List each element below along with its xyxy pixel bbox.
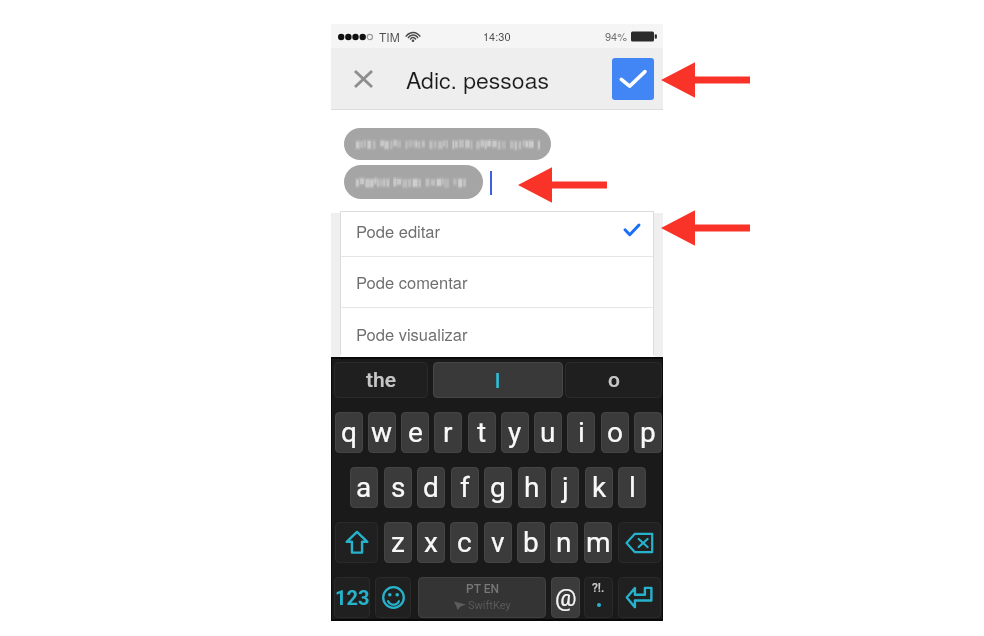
staticText: v bbox=[491, 526, 505, 559]
button[interactable]: u bbox=[534, 412, 562, 453]
button[interactable]: Confirmar bbox=[612, 58, 654, 100]
button[interactable]: Shift bbox=[335, 522, 378, 563]
button[interactable]: h bbox=[518, 467, 546, 508]
button[interactable]: o bbox=[601, 412, 629, 453]
staticText: Pode editar bbox=[356, 219, 440, 243]
staticText: w bbox=[371, 416, 393, 449]
staticText: q bbox=[341, 416, 357, 449]
staticText: 14:30 bbox=[483, 28, 511, 44]
button[interactable]: Pode visualizar bbox=[340, 307, 654, 357]
staticText: Pode comentar bbox=[356, 270, 468, 294]
staticText: t bbox=[477, 416, 487, 449]
staticText: 123 bbox=[335, 586, 370, 609]
staticText: l bbox=[629, 471, 636, 504]
button[interactable]: s bbox=[384, 467, 412, 508]
button[interactable]: i bbox=[567, 412, 595, 453]
staticText: Pode visualizar bbox=[356, 322, 468, 346]
staticText: i bbox=[578, 416, 585, 449]
button[interactable]: f bbox=[451, 467, 479, 508]
button[interactable] bbox=[344, 165, 483, 199]
button[interactable]: Fechar bbox=[347, 63, 379, 95]
staticText: TIM bbox=[379, 28, 400, 45]
button[interactable]: Emoji bbox=[375, 577, 411, 618]
button[interactable] bbox=[344, 128, 551, 160]
button[interactable]: PT EN bbox=[418, 577, 546, 618]
staticText: p bbox=[640, 416, 656, 449]
button[interactable]: y bbox=[501, 412, 529, 453]
button[interactable]: e bbox=[401, 412, 429, 453]
staticText: l bbox=[495, 369, 501, 392]
staticText: o bbox=[608, 368, 620, 393]
button[interactable]: k bbox=[585, 467, 613, 508]
staticText: @ bbox=[555, 584, 577, 612]
button[interactable]: 123 bbox=[334, 577, 370, 618]
button[interactable]: j bbox=[551, 467, 579, 508]
staticText: r bbox=[443, 416, 453, 449]
staticText: ?!. bbox=[592, 581, 605, 595]
button[interactable]: l bbox=[618, 467, 646, 508]
button[interactable]: n bbox=[550, 522, 578, 563]
staticText: PT EN bbox=[466, 582, 499, 596]
button[interactable]: p bbox=[634, 412, 662, 453]
button[interactable]: w bbox=[368, 412, 396, 453]
staticText: o bbox=[607, 416, 623, 449]
button[interactable]: ?!. bbox=[584, 577, 613, 618]
staticText: b bbox=[523, 526, 539, 559]
button[interactable]: r bbox=[434, 412, 462, 453]
staticText: k bbox=[592, 471, 607, 504]
button[interactable]: b bbox=[517, 522, 545, 563]
button[interactable]: Pode editar bbox=[340, 211, 654, 256]
staticText: Adic. pessoas bbox=[406, 63, 549, 96]
staticText: the bbox=[366, 368, 396, 393]
button[interactable]: q bbox=[335, 412, 363, 453]
button[interactable]: x bbox=[417, 522, 445, 563]
button[interactable]: the bbox=[334, 362, 428, 398]
button[interactable]: Pode comentar bbox=[340, 256, 654, 307]
staticText: SwiftKey bbox=[468, 599, 511, 612]
staticText: y bbox=[508, 416, 522, 449]
staticText: x bbox=[424, 526, 438, 559]
staticText: 94% bbox=[605, 28, 628, 44]
button[interactable]: @ bbox=[551, 577, 580, 618]
staticText: z bbox=[391, 526, 405, 559]
button[interactable]: m bbox=[584, 522, 612, 563]
button[interactable]: d bbox=[417, 467, 445, 508]
button[interactable]: c bbox=[450, 522, 478, 563]
button[interactable]: z bbox=[384, 522, 412, 563]
staticText: d bbox=[423, 471, 439, 504]
button[interactable]: t bbox=[468, 412, 496, 453]
button[interactable]: Backspace bbox=[618, 522, 661, 563]
staticText: s bbox=[391, 471, 406, 504]
button[interactable]: l bbox=[433, 362, 563, 398]
staticText: e bbox=[408, 416, 423, 449]
staticText: c bbox=[457, 526, 472, 559]
button[interactable]: g bbox=[484, 467, 512, 508]
button[interactable]: o bbox=[565, 362, 662, 398]
staticText: u bbox=[540, 416, 556, 449]
staticText: f bbox=[460, 471, 470, 504]
staticText: j bbox=[562, 471, 569, 504]
staticText: g bbox=[490, 471, 506, 504]
button[interactable]: a bbox=[350, 467, 378, 508]
staticText: m bbox=[586, 526, 611, 559]
staticText: n bbox=[556, 526, 572, 559]
staticText: a bbox=[356, 471, 372, 504]
button[interactable]: Enter bbox=[618, 577, 661, 618]
button[interactable]: v bbox=[484, 522, 512, 563]
staticText: h bbox=[524, 471, 540, 504]
